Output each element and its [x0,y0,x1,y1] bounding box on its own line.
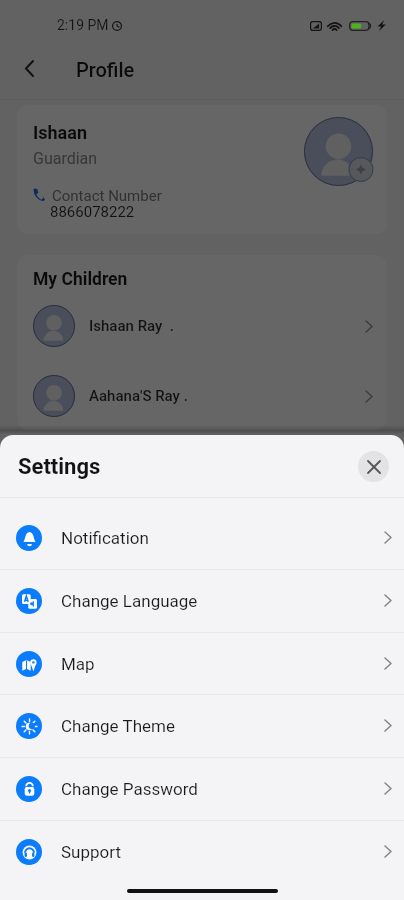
button[interactable]: Map [0,632,404,695]
button[interactable]: Change Password [0,757,404,820]
staticText: Change Password [61,779,198,799]
staticText: Contact Number [52,187,162,205]
staticText: Map [61,654,95,674]
staticText: Support [61,842,121,862]
button[interactable]: Close [358,451,389,482]
staticText: 8866078222 [50,203,135,221]
staticText: 2:19 PM [57,17,109,33]
button[interactable]: Change Language [0,569,404,632]
staticText: Settings [18,454,101,480]
button[interactable]: Notification [0,506,404,569]
staticText: Guardian [33,149,98,168]
staticText: Change Language [61,591,198,611]
staticText: Profile [76,58,135,81]
staticText: Ishaan Ray . [89,317,174,335]
button[interactable]: Aahana'S Ray . [17,366,387,426]
staticText: My Children [33,269,128,290]
button[interactable]: Support [0,820,404,883]
staticText: Change Theme [61,716,175,736]
button[interactable]: Ishaan Ray . [17,296,387,356]
button[interactable]: Change Theme [0,694,404,757]
button[interactable]: Back [9,48,50,89]
staticText: Ishaan [33,122,87,143]
staticText: Notification [61,528,149,548]
staticText: Aahana'S Ray . [89,387,188,405]
